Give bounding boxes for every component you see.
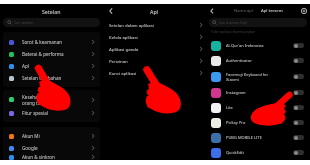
staticText: Akun & sinkron: [22, 154, 55, 160]
staticText: Al-Qur'an Indonesia: [226, 43, 264, 48]
button[interactable]: Akun & sinkron: [3, 154, 100, 160]
button[interactable]: Toggle Al-Qur'an Indonesia: [293, 43, 304, 48]
staticText: Cari di antara 9 apl: [219, 21, 248, 25]
staticText: Authenticator: [226, 58, 252, 63]
staticText: Setelan: [42, 8, 61, 15]
staticText: Nama apl: [234, 8, 253, 14]
button[interactable]: Apl: [3, 60, 100, 72]
button[interactable]: Toggle QuickEdit: [293, 150, 304, 155]
staticText: Apl tersem: [261, 8, 283, 14]
staticText: PUBG MOBILE LITE: [226, 135, 262, 140]
button[interactable]: Authenticator: [206, 53, 310, 68]
button[interactable]: Kunci aplikasi: [103, 67, 206, 79]
button[interactable]: Back: [107, 7, 115, 15]
button[interactable]: Setelan dalam aplikasi: [103, 19, 206, 31]
staticText: Facemoji Keyboard for: [226, 72, 269, 77]
button[interactable]: Al-Qur'an Indonesia: [206, 38, 310, 53]
staticText: Fitur spesial: [22, 110, 48, 116]
button[interactable]: Kesehatan Digital &: [3, 92, 100, 107]
button[interactable]: PUBG MOBILE LITE: [206, 130, 310, 145]
button[interactable]: Settings: [300, 7, 308, 15]
staticText: QuickEdit: [226, 150, 244, 155]
staticText: Xiaomi: [226, 77, 239, 82]
staticText: PicSay Pro: [226, 120, 246, 125]
staticText: Kunci aplikasi: [109, 70, 137, 76]
staticText: Lite: [226, 105, 233, 110]
staticText: Apl: [22, 63, 29, 69]
staticText: Perizinan: [109, 58, 128, 64]
button[interactable]: Cari setelan: [3, 18, 100, 27]
button[interactable]: Instagram: [206, 85, 310, 100]
button[interactable]: Toggle Authenticator: [293, 58, 304, 63]
staticText: Kesehatan Digital &: [22, 94, 65, 100]
button[interactable]: Toggle PicSay Pro: [293, 120, 304, 125]
button[interactable]: Aplikasi ganda: [103, 43, 206, 55]
button[interactable]: Cari di antara 9 apl: [209, 18, 307, 27]
button[interactable]: Back: [208, 7, 216, 15]
staticText: Instagram: [226, 90, 246, 95]
staticText: Google: [22, 145, 38, 151]
button[interactable]: Facemoji Keyboard for: [206, 68, 310, 85]
button[interactable]: Akun Mi: [3, 130, 100, 142]
button[interactable]: Sorot & keamanan: [3, 36, 100, 48]
button[interactable]: Toggle Lite: [293, 105, 304, 110]
staticText: Setelan dalam aplikasi: [109, 22, 154, 28]
button[interactable]: Google: [3, 142, 100, 154]
button[interactable]: Setelan tambahan: [3, 72, 100, 84]
button[interactable]: Lite: [206, 100, 310, 115]
staticText: Aplikasi ganda: [109, 46, 139, 52]
button[interactable]: Kelola aplikasi: [103, 31, 206, 43]
button[interactable]: Perizinan: [103, 55, 206, 67]
button[interactable]: Toggle Instagram: [293, 90, 304, 95]
button[interactable]: Toggle PUBG MOBILE LITE: [293, 135, 304, 140]
staticText: Setelan tambahan: [22, 75, 62, 81]
staticText: orang tua: [22, 100, 44, 106]
button[interactable]: Toggle Facemoji Keyboard for: [293, 74, 304, 79]
staticText: Sorot & keamanan: [22, 39, 63, 45]
button[interactable]: QuickEdit: [206, 145, 310, 160]
button[interactable]: Fitur spesial: [3, 107, 100, 119]
staticText: Kelola aplikasi: [109, 34, 138, 40]
button[interactable]: PicSay Pro: [206, 115, 310, 130]
staticText: 9 dari aplikasi disembunyikan: [211, 30, 256, 34]
staticText: Akun Mi: [22, 133, 40, 139]
staticText: Cari setelan: [14, 20, 34, 25]
staticText: Baterai & performa: [22, 51, 64, 57]
button[interactable]: Baterai & performa: [3, 48, 100, 60]
staticText: Apl: [150, 8, 159, 15]
